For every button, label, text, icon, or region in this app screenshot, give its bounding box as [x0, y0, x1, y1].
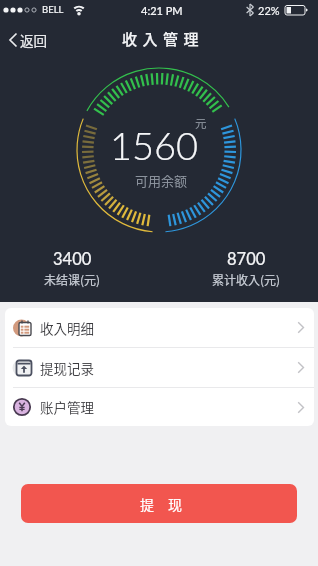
staticText: BELL [42, 4, 64, 15]
staticText: 账户管理 [40, 397, 94, 417]
staticText: 可用余额 [135, 171, 188, 190]
button[interactable]: 提现记录 [5, 348, 314, 387]
staticText: 收入管理 [122, 28, 205, 50]
staticText: 累计收入(元) [212, 271, 281, 288]
staticText: 元 [195, 115, 207, 132]
staticText: 22% [258, 4, 280, 17]
staticText: 返回 [20, 30, 47, 50]
button[interactable]: 返回 [4, 26, 51, 54]
button[interactable]: 账户管理 [5, 388, 314, 426]
staticText: 4:21 PM [141, 4, 183, 17]
staticText: 未结课(元) [44, 271, 101, 288]
staticText: 1560 [110, 122, 199, 168]
staticText: 8700 [227, 249, 266, 269]
staticText: 3400 [53, 249, 92, 269]
staticText: 提 现 [140, 494, 182, 514]
staticText: 提现记录 [40, 358, 94, 378]
staticText: 收入明细 [40, 318, 94, 338]
button[interactable]: 提 现 [21, 484, 297, 523]
button[interactable]: 收入明细 [5, 308, 314, 347]
